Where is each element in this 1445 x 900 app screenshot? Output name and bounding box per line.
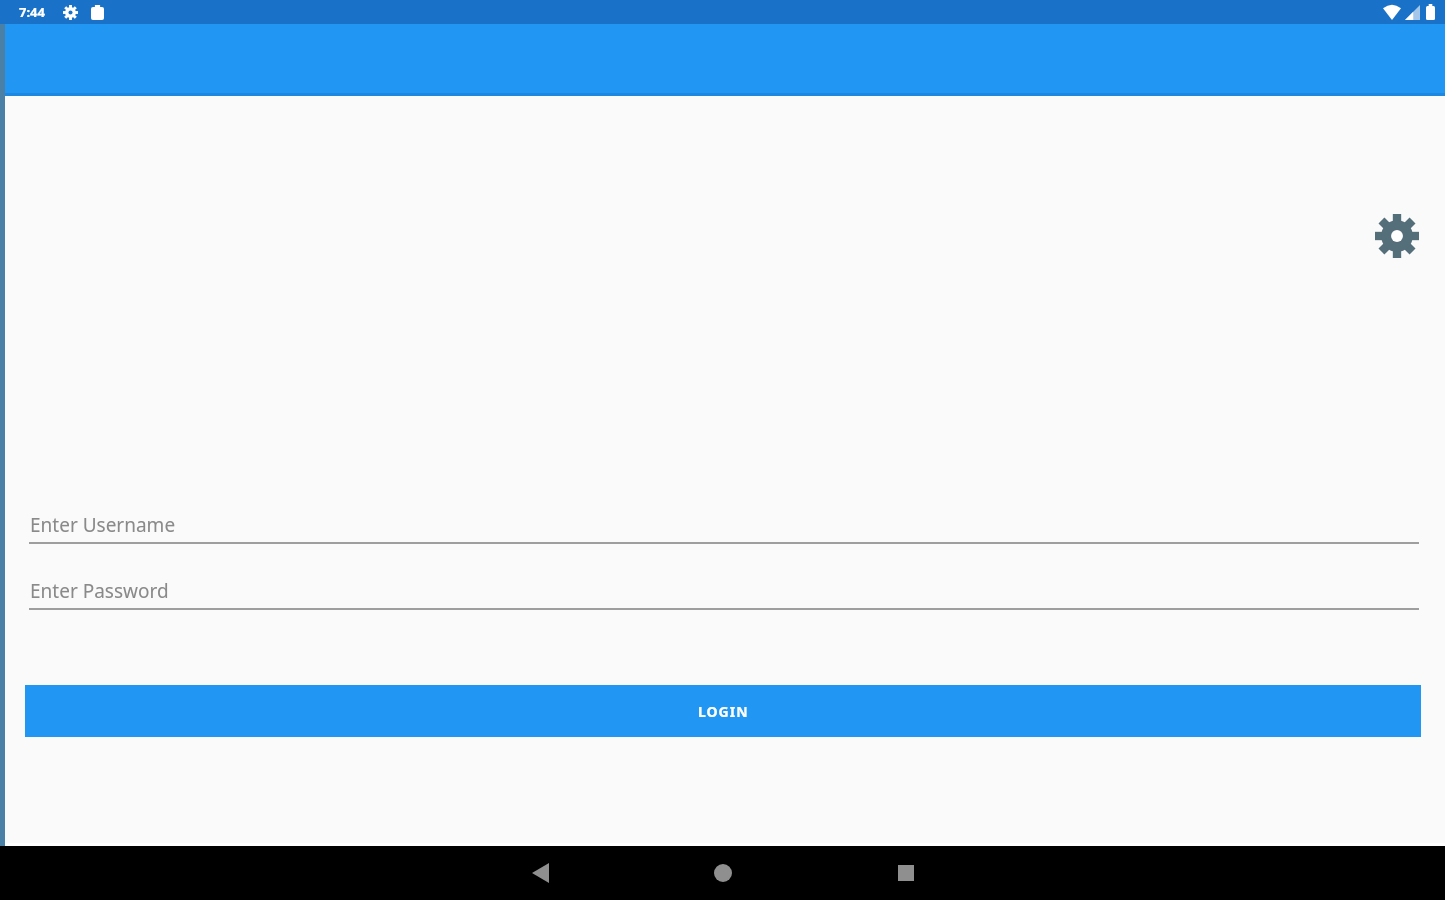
button[interactable]: LOGIN [25,685,1421,737]
button[interactable]: Enter Username [0,512,1445,538]
button[interactable] [513,846,567,900]
staticText: Enter Password [30,578,169,604]
button[interactable]: Enter Password [0,578,1445,604]
button[interactable] [879,846,933,900]
button[interactable] [1375,214,1419,258]
button[interactable] [696,846,750,900]
staticText: 7:44 [19,3,45,21]
staticText: Enter Username [30,512,176,538]
staticText: LOGIN [698,702,749,721]
